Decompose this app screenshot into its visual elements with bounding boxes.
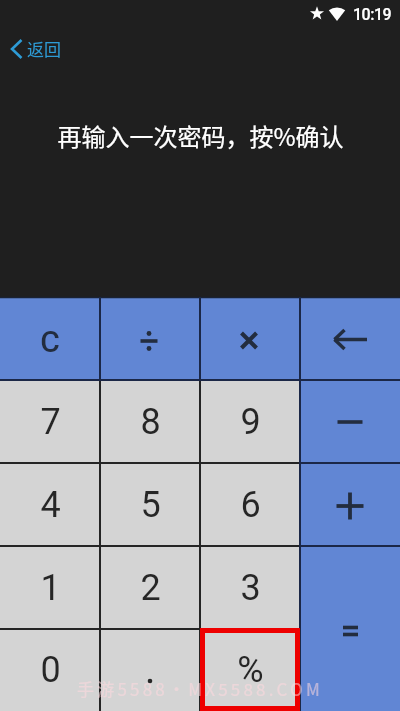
button[interactable] — [300, 546, 400, 711]
staticText: 手游5588・MX5588.COM — [77, 676, 323, 701]
button[interactable] — [200, 297, 300, 380]
button[interactable]: 6 — [200, 463, 300, 546]
staticText: 再输入一次密码，按%确认 — [57, 118, 344, 153]
button[interactable]: 2 — [100, 546, 200, 629]
button[interactable]: 4 — [0, 463, 100, 546]
button[interactable]: % — [200, 629, 300, 711]
button[interactable]: C — [0, 297, 100, 380]
button[interactable]: 返回 — [4, 34, 65, 63]
button[interactable] — [100, 297, 200, 380]
button[interactable] — [300, 297, 400, 380]
button[interactable] — [300, 380, 400, 463]
staticText: 1 — [40, 567, 61, 609]
button[interactable]: 9 — [200, 380, 300, 463]
staticText: 6 — [240, 484, 261, 526]
staticText: 2 — [140, 567, 161, 609]
staticText: 4 — [40, 484, 61, 526]
button[interactable]: 5 — [100, 463, 200, 546]
button[interactable]: 3 — [200, 546, 300, 629]
staticText: C — [40, 324, 60, 359]
button[interactable] — [300, 463, 400, 546]
button[interactable]: 8 — [100, 380, 200, 463]
staticText: 返回 — [27, 36, 61, 61]
staticText: 8 — [140, 401, 161, 443]
staticText: 10:19 — [353, 5, 392, 24]
button[interactable]: 7 — [0, 380, 100, 463]
staticText: 5 — [140, 484, 161, 526]
button[interactable]: 0 — [0, 629, 100, 711]
staticText: 3 — [240, 567, 261, 609]
button[interactable]: 1 — [0, 546, 100, 629]
staticText: % — [237, 649, 264, 691]
staticText: 9 — [240, 401, 261, 443]
staticText: 7 — [40, 401, 61, 443]
staticText: 0 — [40, 649, 61, 691]
button[interactable] — [100, 629, 200, 711]
